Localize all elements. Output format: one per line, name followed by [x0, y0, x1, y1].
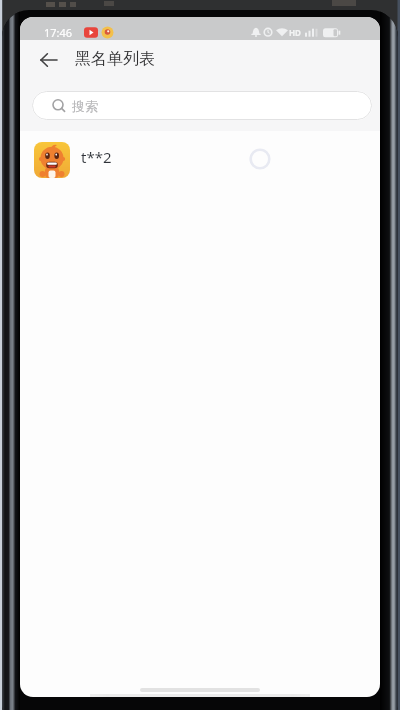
button[interactable]: 搜索: [32, 91, 372, 120]
staticText: 黑名单列表: [75, 49, 155, 69]
staticText: 17:46: [44, 25, 73, 40]
staticText: HD: [289, 27, 301, 38]
button[interactable]: [32, 49, 66, 71]
button[interactable]: t**2: [20, 131, 380, 188]
staticText: t**2: [81, 147, 112, 167]
staticText: 搜索: [72, 98, 98, 114]
